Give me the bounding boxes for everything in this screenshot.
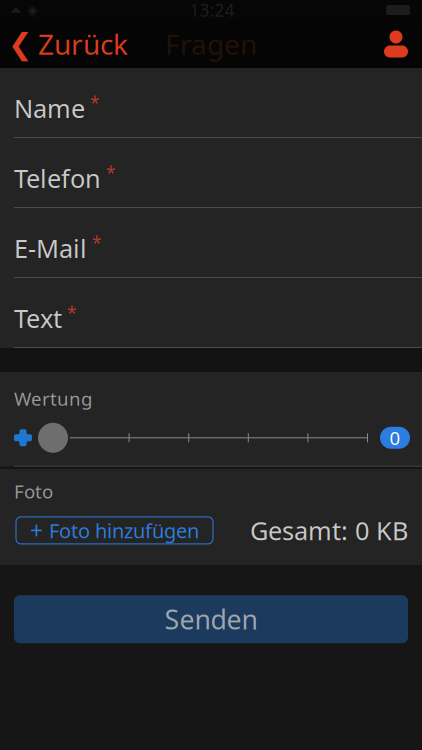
staticText: Fragen [165,25,257,63]
staticText: ❮ [8,27,33,61]
staticText: Foto [14,479,53,504]
staticText: * [106,161,116,184]
button[interactable]: Senden [14,595,408,643]
staticText: Zurück [38,25,128,63]
button[interactable]: Name [0,68,422,138]
staticText: Senden [164,601,257,637]
staticText: Telefon [14,161,101,195]
staticText: Wertung [14,386,92,411]
staticText: Foto hinzufügen [49,517,199,544]
staticText: + [30,515,43,545]
staticText: 0 [389,425,400,450]
staticText: * [92,231,102,254]
staticText: * [67,301,77,324]
button[interactable]: + [16,517,213,544]
button[interactable]: Profil [372,20,422,68]
button[interactable]: Telefon [0,138,422,208]
staticText: E-Mail [14,231,87,265]
staticText: Gesamt: 0 KB [250,514,408,547]
staticText: 13:24 [189,0,234,21]
button[interactable]: Text [0,278,422,348]
button[interactable]: E-Mail [0,208,422,278]
button[interactable]: ❮ [0,20,136,68]
staticText: * [90,91,100,114]
staticText: Name [14,91,85,125]
staticText: ⏶ ◈ [10,2,38,18]
staticText: Text [14,301,62,335]
